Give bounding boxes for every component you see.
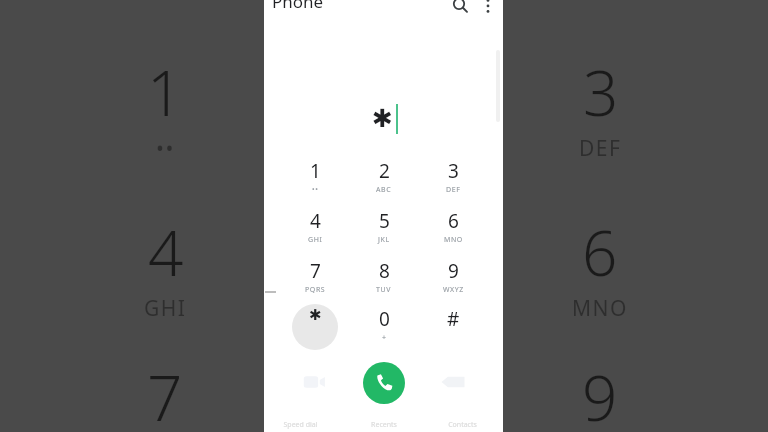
staticText: +	[382, 333, 387, 343]
staticText: #	[447, 306, 460, 332]
staticText: 7	[310, 258, 321, 284]
button[interactable]: Recents	[350, 420, 418, 432]
staticText: ABC	[376, 185, 392, 195]
staticText: 3	[583, 50, 619, 134]
staticText: MNO	[572, 294, 628, 320]
staticText: 5	[379, 208, 390, 234]
staticText: PQRS	[305, 285, 326, 295]
staticText: 6	[582, 210, 618, 294]
staticText: MNO	[444, 235, 463, 245]
staticText: 0	[379, 306, 390, 332]
staticText: WXYZ	[443, 285, 464, 295]
staticText: ✱	[309, 306, 322, 323]
staticText: 4	[148, 210, 184, 294]
button[interactable]: 8	[356, 258, 412, 298]
staticText: JKL	[378, 235, 390, 245]
button[interactable]: 5	[356, 208, 412, 248]
staticText: 9	[582, 355, 618, 432]
staticText: 8	[379, 258, 390, 284]
button[interactable]: Backspace	[437, 370, 469, 394]
button[interactable]: 4	[287, 208, 343, 248]
button[interactable]: 9	[425, 258, 481, 298]
button[interactable]: 0	[356, 306, 412, 346]
button[interactable]: #	[425, 306, 481, 346]
button[interactable]: Contacts	[428, 420, 496, 432]
staticText: ••	[312, 185, 319, 195]
button[interactable]: Call	[363, 362, 405, 404]
staticText: 1	[147, 50, 183, 134]
staticText: DEF	[446, 185, 461, 195]
button[interactable]: Speed dial	[266, 420, 334, 432]
staticText: Phone	[272, 0, 324, 13]
staticText: 7	[147, 355, 183, 432]
staticText: GHI	[308, 235, 323, 245]
staticText: 3	[448, 158, 459, 184]
button[interactable]: Search	[448, 0, 470, 10]
button[interactable]: Phone	[272, 0, 324, 13]
staticText: TUV	[376, 285, 392, 295]
button[interactable]: 7	[287, 258, 343, 298]
staticText: 4	[310, 208, 321, 234]
staticText: 6	[448, 208, 459, 234]
button[interactable]: Video call	[298, 366, 330, 398]
staticText: 2	[379, 158, 390, 184]
staticText: Speed dial	[283, 420, 318, 430]
staticText: DEF	[579, 134, 622, 160]
staticText: Contacts	[448, 420, 477, 430]
staticText: ✱	[372, 104, 393, 133]
staticText: 9	[448, 258, 459, 284]
button[interactable]: More options	[478, 0, 498, 8]
staticText: Recents	[371, 420, 397, 430]
staticText: ••	[156, 134, 175, 160]
button[interactable]: 1	[287, 158, 343, 198]
button[interactable]: 6	[425, 208, 481, 248]
staticText: GHI	[144, 294, 187, 320]
staticText: 1	[310, 158, 321, 184]
button[interactable]: 3	[425, 158, 481, 198]
button[interactable]: ✱	[287, 306, 343, 346]
button[interactable]: 2	[356, 158, 412, 198]
